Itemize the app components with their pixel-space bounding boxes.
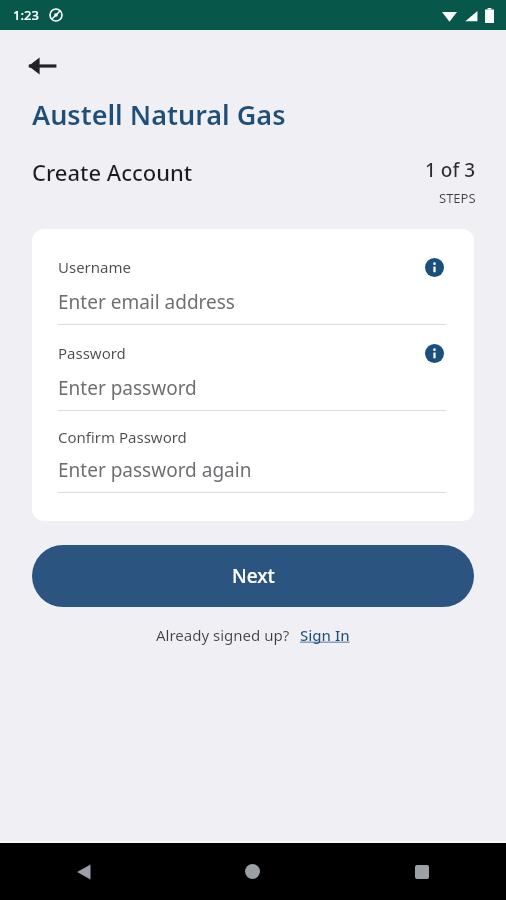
staticText: STEPS (439, 189, 476, 207)
staticText: Next (232, 563, 275, 589)
staticText: Enter email address (58, 289, 235, 315)
button[interactable]: Enter password again (58, 457, 446, 493)
staticText: 1:23 (13, 6, 39, 24)
staticText: Username (58, 257, 422, 277)
staticText: Confirm Password (58, 427, 446, 447)
staticText: Password (58, 343, 422, 363)
button[interactable]: Back (0, 843, 168, 900)
staticText: Already signed up? (156, 625, 290, 645)
button[interactable]: Enter email address (58, 289, 446, 325)
button[interactable]: Recent apps (337, 843, 506, 900)
button[interactable]: Sign In (300, 625, 350, 645)
button[interactable]: Information about Password (422, 341, 446, 365)
button[interactable]: Information about Username (422, 255, 446, 279)
staticText: Enter password (58, 375, 197, 401)
staticText: Sign In (300, 625, 350, 645)
button[interactable]: Back (18, 42, 66, 90)
staticText: 1 of 3 (425, 157, 476, 183)
button[interactable]: Next (32, 545, 474, 607)
staticText: Enter password again (58, 457, 252, 483)
staticText: Create Account (32, 157, 425, 187)
button[interactable]: Home (168, 843, 337, 900)
button[interactable]: Enter password (58, 375, 446, 411)
staticText: Austell Natural Gas (32, 96, 286, 133)
